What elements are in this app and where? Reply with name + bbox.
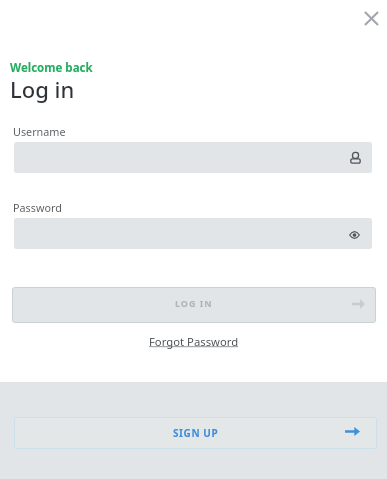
button[interactable]: Show password	[343, 223, 366, 246]
staticText: Password	[13, 200, 62, 215]
button[interactable]: Pick account	[343, 146, 367, 170]
button[interactable]: Username input	[14, 142, 372, 173]
staticText: Log in	[10, 74, 75, 104]
staticText: Forgot Password	[149, 334, 239, 349]
button[interactable]: Forgot Password	[149, 334, 239, 349]
staticText: Username	[13, 124, 66, 139]
staticText: SIGN UP	[173, 426, 219, 440]
button[interactable]: Password input	[14, 218, 372, 249]
button[interactable]: LOG IN	[12, 287, 376, 323]
staticText: Welcome back	[10, 60, 93, 76]
button[interactable]: SIGN UP	[14, 417, 377, 449]
staticText: LOG IN	[175, 297, 213, 309]
button[interactable]: Close	[356, 3, 387, 34]
